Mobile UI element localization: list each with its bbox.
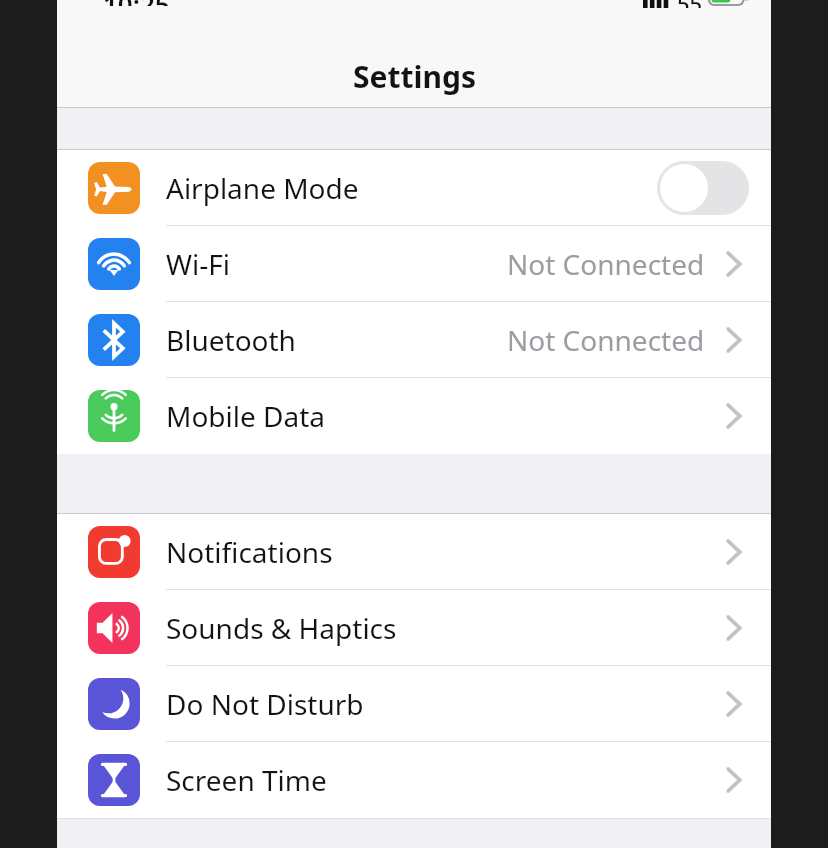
other: Open [719,244,749,284]
staticText: Screen Time [166,761,327,799]
button[interactable]: Do Not Disturb [57,666,771,742]
staticText: Not Connected [507,321,705,359]
button[interactable]: Bluetooth [57,302,771,378]
staticText: Mobile Data [166,397,326,435]
button[interactable]: Airplane Mode [57,150,771,226]
staticText: Airplane Mode [166,169,359,207]
button[interactable]: Sounds & Haptics [57,590,771,666]
other: Open [719,684,749,724]
staticText: Settings [353,56,476,97]
other: Open [719,608,749,648]
staticText: Wi-Fi [166,245,231,283]
button[interactable]: Screen Time [57,742,771,818]
button[interactable]: Notifications [57,514,771,590]
staticText: Sounds & Haptics [166,609,397,647]
button[interactable]: Wi-Fi [57,226,771,302]
other: Open [719,760,749,800]
other: Open [719,532,749,572]
button[interactable]: Airplane Mode toggle [657,161,749,215]
staticText: Not Connected [507,245,705,283]
staticText: Notifications [166,533,333,571]
other: Open [719,320,749,360]
staticText: Do Not Disturb [166,685,364,723]
staticText: 55 [677,0,703,8]
staticText: 10:25 [103,0,170,6]
other: Open [719,396,749,436]
staticText: Bluetooth [166,321,296,359]
button[interactable]: Mobile Data [57,378,771,454]
